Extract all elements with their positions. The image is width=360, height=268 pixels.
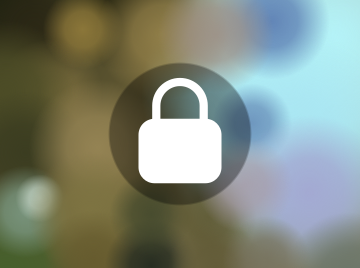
button[interactable]: Locked content	[132, 74, 228, 194]
